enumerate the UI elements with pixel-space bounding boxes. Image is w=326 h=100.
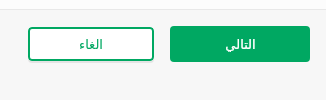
staticText: الغاء bbox=[79, 37, 103, 52]
button[interactable]: التالي bbox=[170, 26, 310, 62]
button[interactable]: الغاء bbox=[28, 27, 154, 61]
staticText: التالي bbox=[225, 37, 256, 52]
